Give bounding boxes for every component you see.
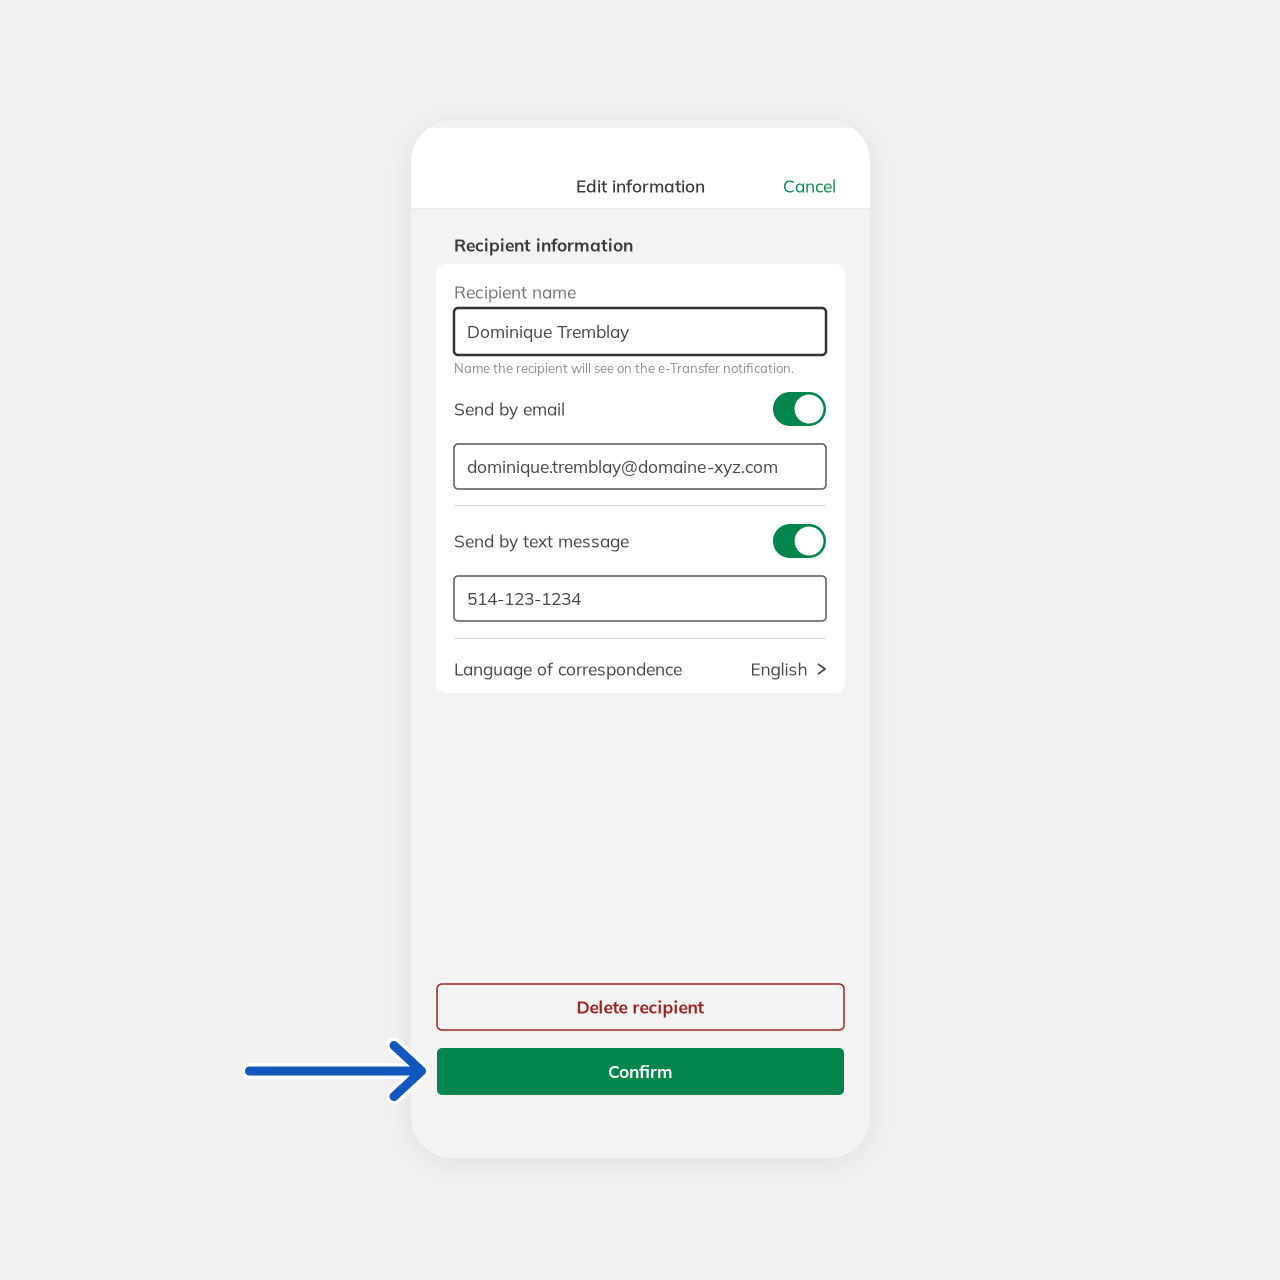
staticText: Name the recipient will see on the e-Tra… — [454, 360, 794, 376]
staticText: Recipient information — [454, 234, 633, 256]
staticText: Language of correspondence — [454, 658, 682, 680]
button[interactable]: 514-123-1234 — [454, 576, 826, 621]
staticText: 514-123-1234 — [467, 588, 581, 609]
button[interactable]: dominique.tremblay@domaine-xyz.com — [454, 444, 826, 489]
staticText: Dominique Tremblay — [467, 321, 629, 342]
staticText: Recipient name — [454, 281, 576, 303]
staticText: English — [750, 658, 807, 680]
staticText: Cancel — [783, 175, 836, 197]
button[interactable]: Send by email — [454, 392, 826, 426]
staticText: dominique.tremblay@domaine-xyz.com — [467, 456, 778, 477]
button[interactable]: Cancel — [411, 168, 870, 204]
staticText: Delete recipient — [576, 996, 704, 1018]
button[interactable]: Send by text message — [454, 524, 826, 558]
staticText: Send by text message — [454, 530, 629, 552]
button[interactable]: Dominique Tremblay — [454, 308, 826, 355]
button[interactable]: Confirm — [437, 1048, 844, 1095]
button[interactable]: Language of correspondence — [454, 657, 826, 681]
staticText: Send by email — [454, 398, 565, 420]
button[interactable]: Delete recipient — [437, 984, 844, 1030]
staticText: Edit information — [576, 175, 705, 197]
staticText: Confirm — [608, 1061, 673, 1082]
